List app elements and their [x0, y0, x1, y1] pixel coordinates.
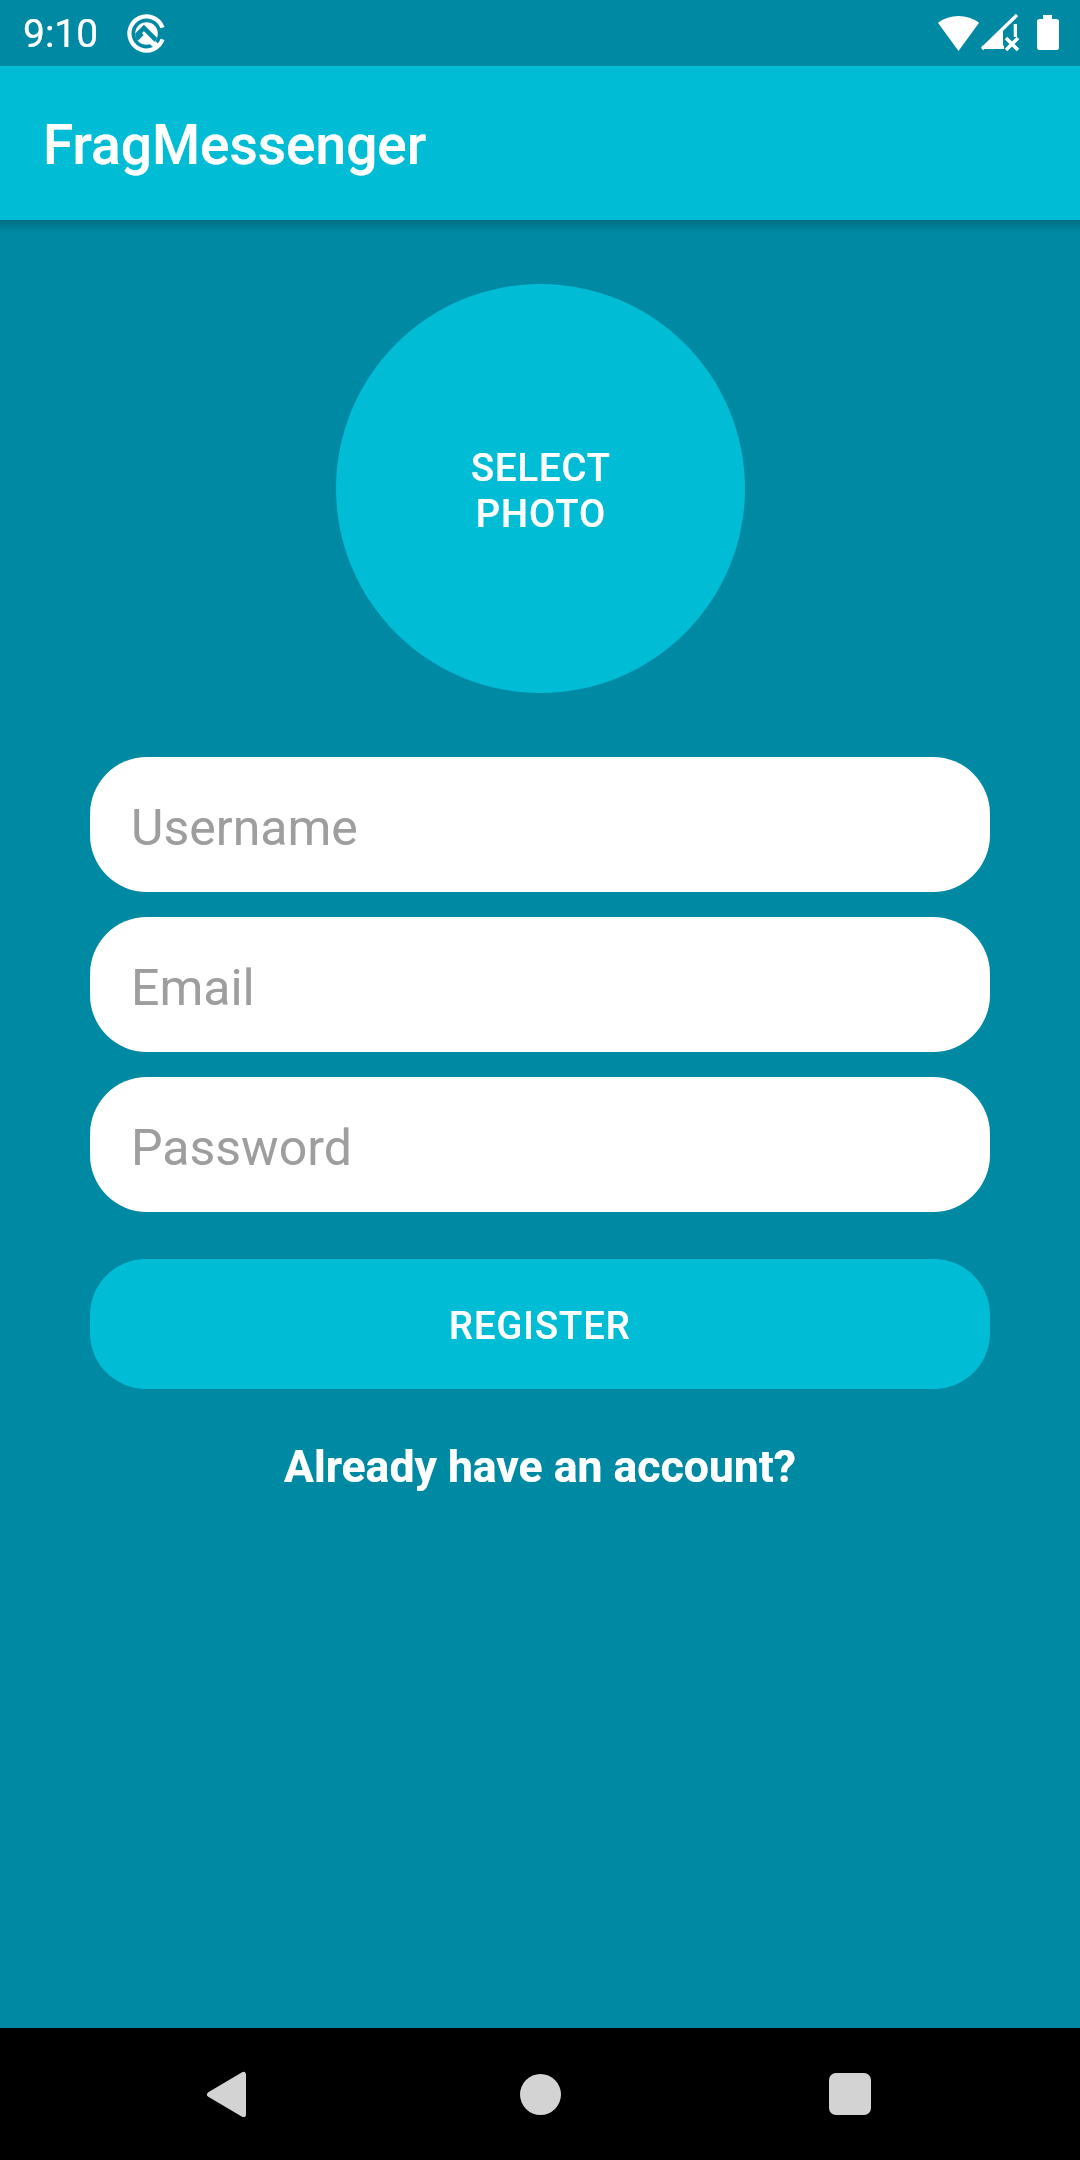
button[interactable]: Recent apps — [784, 2028, 916, 2160]
staticText: Username — [131, 799, 358, 858]
staticText: REGISTER — [449, 1304, 631, 1349]
staticText: 9:10 — [23, 11, 99, 57]
button[interactable]: Username — [90, 757, 990, 892]
button[interactable]: Password — [90, 1077, 990, 1212]
button[interactable]: Home — [474, 2028, 606, 2160]
button[interactable]: Back — [160, 2028, 292, 2160]
button[interactable]: Already have an account? — [260, 1421, 820, 1501]
button[interactable]: SELECT PHOTO — [336, 284, 745, 693]
staticText: FragMessenger — [43, 113, 427, 177]
staticText: SELECT PHOTO — [471, 446, 611, 537]
button[interactable]: Email — [90, 917, 990, 1052]
staticText: Email — [131, 959, 255, 1018]
staticText: Already have an account? — [284, 1441, 796, 1493]
staticText: Password — [131, 1119, 352, 1178]
button[interactable]: REGISTER — [90, 1259, 990, 1389]
